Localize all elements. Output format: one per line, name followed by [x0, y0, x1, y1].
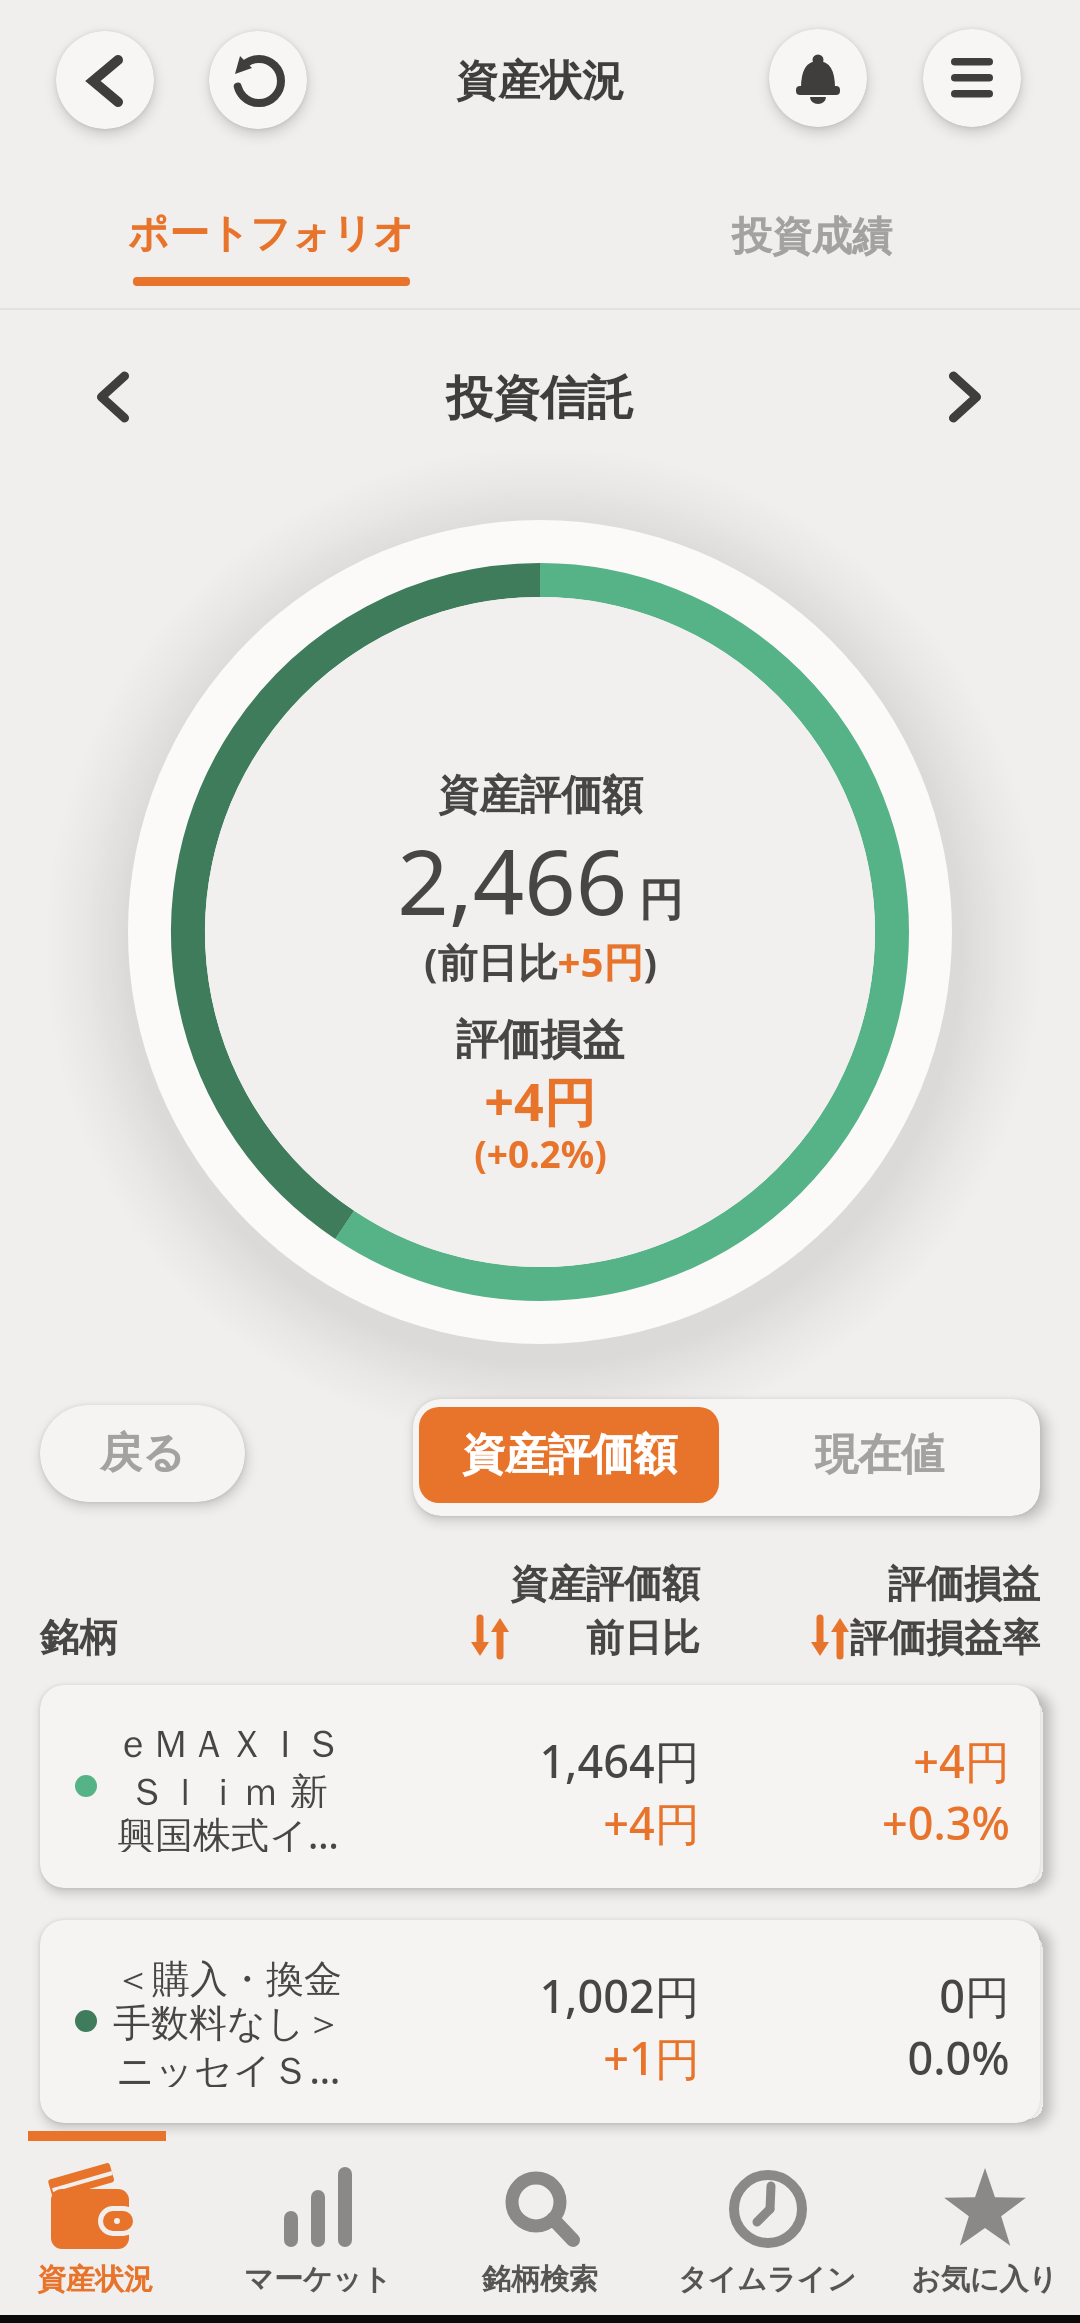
staticText: 評価損益率: [850, 1614, 1040, 1662]
button[interactable]: マーケット: [203, 2156, 433, 2298]
button[interactable]: 資産状況: [0, 2156, 210, 2298]
staticText: 資産状況: [37, 2261, 153, 2298]
staticText: 銘柄検索: [482, 2261, 598, 2298]
staticText: (+0.2%): [474, 1128, 607, 1178]
staticText: 戻る: [100, 1427, 185, 1480]
staticText: +1円: [603, 2027, 700, 2088]
staticText: 投資成績: [732, 211, 892, 261]
staticText: 手数料なし＞: [113, 1999, 343, 2043]
button[interactable]: 資産評価額: [419, 1407, 719, 1503]
button[interactable]: 銘柄検索: [425, 2156, 655, 2298]
staticText: ニッセイＳ…: [116, 2043, 341, 2087]
staticText: 興国株式イ…: [117, 1808, 339, 1852]
staticText: 現在値: [815, 1428, 944, 1482]
staticText: 投資信託: [446, 369, 634, 428]
staticText: 資産状況: [456, 55, 624, 108]
staticText: (前日比+5円): [424, 934, 657, 989]
button[interactable]: ポートフォリオ: [116, 196, 426, 288]
staticText: 0.0%: [907, 2027, 1010, 2088]
staticText: お気に入り: [911, 2261, 1059, 2298]
button[interactable]: [73, 364, 153, 430]
staticText: ポートフォリオ: [128, 208, 414, 258]
button[interactable]: タイムライン: [652, 2156, 882, 2298]
button[interactable]: [925, 364, 1005, 430]
staticText: 評価損益: [888, 1560, 1040, 1608]
staticText: +4円: [913, 1730, 1010, 1791]
staticText: +4円: [484, 1065, 596, 1129]
staticText: 資産評価額: [438, 770, 643, 822]
button[interactable]: 投資成績: [700, 206, 924, 266]
staticText: タイムライン: [678, 2261, 857, 2298]
staticText: 前日比: [586, 1614, 700, 1662]
staticText: ＜購入・換金: [114, 1955, 342, 1999]
staticText: 2,466 円: [397, 819, 683, 937]
button[interactable]: ｅＭＡＸＩＳ: [40, 1685, 1040, 1888]
button[interactable]: 現在値: [719, 1407, 1040, 1503]
staticText: 銘柄: [40, 1613, 118, 1662]
staticText: マーケット: [244, 2261, 392, 2298]
button[interactable]: [56, 31, 154, 129]
staticText: 資産評価額: [510, 1560, 700, 1608]
staticText: 0円: [939, 1965, 1010, 2026]
staticText: +4円: [603, 1792, 700, 1853]
staticText: ｅＭＡＸＩＳ: [114, 1720, 342, 1764]
button[interactable]: ＜購入・換金: [40, 1920, 1040, 2123]
button[interactable]: [209, 31, 307, 129]
staticText: 1,464円: [539, 1730, 700, 1791]
staticText: 評価損益: [456, 1014, 624, 1067]
staticText: +0.3%: [882, 1792, 1010, 1853]
button[interactable]: [769, 29, 867, 127]
button[interactable]: [923, 29, 1021, 127]
staticText: 1,002円: [539, 1965, 700, 2026]
button[interactable]: お気に入り: [870, 2156, 1080, 2298]
staticText: 資産評価額: [462, 1428, 677, 1482]
button[interactable]: 戻る: [40, 1405, 245, 1502]
staticText: Ｓｌｉｍ 新: [128, 1764, 328, 1808]
